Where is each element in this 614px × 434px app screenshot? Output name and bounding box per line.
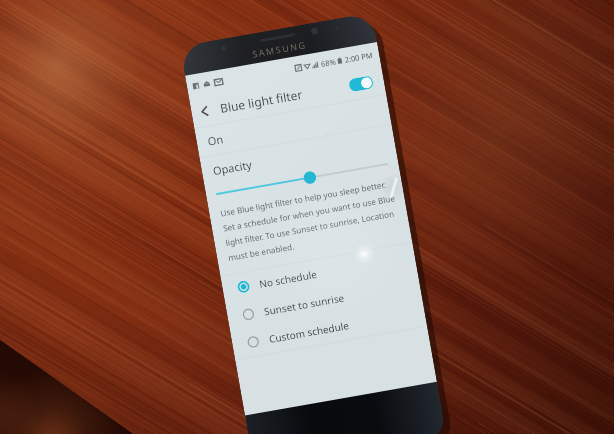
button[interactable]: On <box>194 95 391 157</box>
staticText: SAMSUNG <box>251 38 307 60</box>
button[interactable]: Blue light filter on/off <box>348 75 374 92</box>
button[interactable]: No schedule <box>220 243 417 304</box>
button[interactable]: Sunset to sunrise <box>225 270 422 332</box>
button[interactable]: Custom schedule <box>230 298 427 359</box>
button[interactable]: Back <box>189 65 386 128</box>
staticText: Blue light filter <box>219 86 304 116</box>
staticText: Sunset to sunrise <box>263 290 346 318</box>
staticText: 68% <box>320 56 337 69</box>
other: Back <box>197 104 213 119</box>
staticText: 2:00 PM <box>344 50 374 65</box>
staticText: Custom schedule <box>268 318 350 346</box>
staticText: On <box>206 131 225 149</box>
staticText: Opacity <box>212 156 254 178</box>
staticText: Use Blue light filter to help you sleep … <box>219 177 404 264</box>
staticText: No schedule <box>258 267 319 291</box>
